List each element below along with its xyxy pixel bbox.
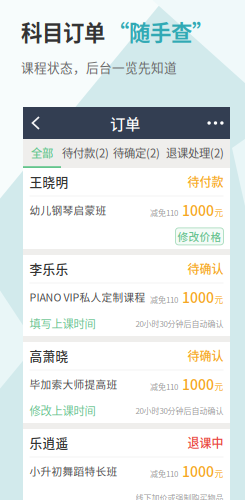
staticText: 高萧晓 bbox=[29, 346, 68, 365]
staticText: 毕加索大师提高班 bbox=[29, 376, 117, 392]
staticText: 1000 bbox=[182, 374, 214, 394]
staticText: 减免110 bbox=[150, 468, 178, 479]
staticText: PIANO VIP私人定制课程 bbox=[29, 289, 145, 305]
button[interactable]: 修改价格 bbox=[175, 228, 223, 245]
staticText: 乐逍遥 bbox=[29, 433, 68, 452]
staticText: 减免110 bbox=[150, 207, 178, 218]
staticText: 线下加价或强制购买物品 bbox=[135, 492, 223, 500]
staticText: 小升初舞蹈特长班 bbox=[29, 463, 117, 479]
staticText: 全部 bbox=[31, 144, 53, 161]
staticText: 元 bbox=[214, 380, 223, 392]
staticText: 元 bbox=[214, 293, 223, 305]
staticText: 李乐乐 bbox=[29, 259, 68, 278]
staticText: 幼儿钢琴启蒙班 bbox=[29, 202, 106, 218]
staticText: 20小时30分钟后自动确认 bbox=[135, 318, 223, 329]
staticText: “随手查” bbox=[108, 16, 213, 47]
button[interactable]: 返回 bbox=[24, 107, 50, 139]
staticText: 1000 bbox=[182, 287, 214, 307]
staticText: 待付款 bbox=[187, 173, 223, 190]
staticText: 修改价格 bbox=[177, 229, 221, 244]
staticText: 待确定(2) bbox=[113, 144, 160, 161]
button[interactable]: 退课处理(2) bbox=[163, 139, 227, 168]
staticText: 1000 bbox=[182, 200, 214, 220]
staticText: 减免110 bbox=[150, 294, 178, 305]
staticText: 修改上课时间 bbox=[29, 402, 95, 419]
staticText: 订单 bbox=[110, 112, 140, 134]
button[interactable]: 修改上课时间 bbox=[29, 397, 101, 424]
staticText: 退课处理(2) bbox=[166, 144, 224, 161]
staticText: 1000 bbox=[182, 461, 214, 481]
staticText: 待付款(2) bbox=[62, 144, 109, 161]
staticText: 待确认 bbox=[187, 260, 223, 277]
staticText: 课程状态，后台一览先知道 bbox=[21, 58, 177, 76]
button[interactable]: 待确定(2) bbox=[110, 139, 163, 168]
staticText: 20小时30分钟后自动确认 bbox=[135, 405, 223, 416]
button[interactable]: 待付款(2) bbox=[61, 139, 110, 168]
staticText: 减免110 bbox=[150, 381, 178, 392]
staticText: 待确认 bbox=[187, 347, 223, 364]
button[interactable]: 全部 bbox=[23, 139, 61, 168]
staticText: 填写上课时间 bbox=[29, 315, 95, 332]
staticText: 王晓明 bbox=[29, 172, 68, 191]
staticText: 科目订单 bbox=[21, 16, 105, 47]
button[interactable]: 更多 bbox=[200, 107, 229, 139]
staticText: 元 bbox=[214, 206, 223, 218]
staticText: 退课中 bbox=[187, 434, 223, 451]
button[interactable]: 填写上课时间 bbox=[29, 310, 101, 337]
staticText: 元 bbox=[214, 467, 223, 479]
